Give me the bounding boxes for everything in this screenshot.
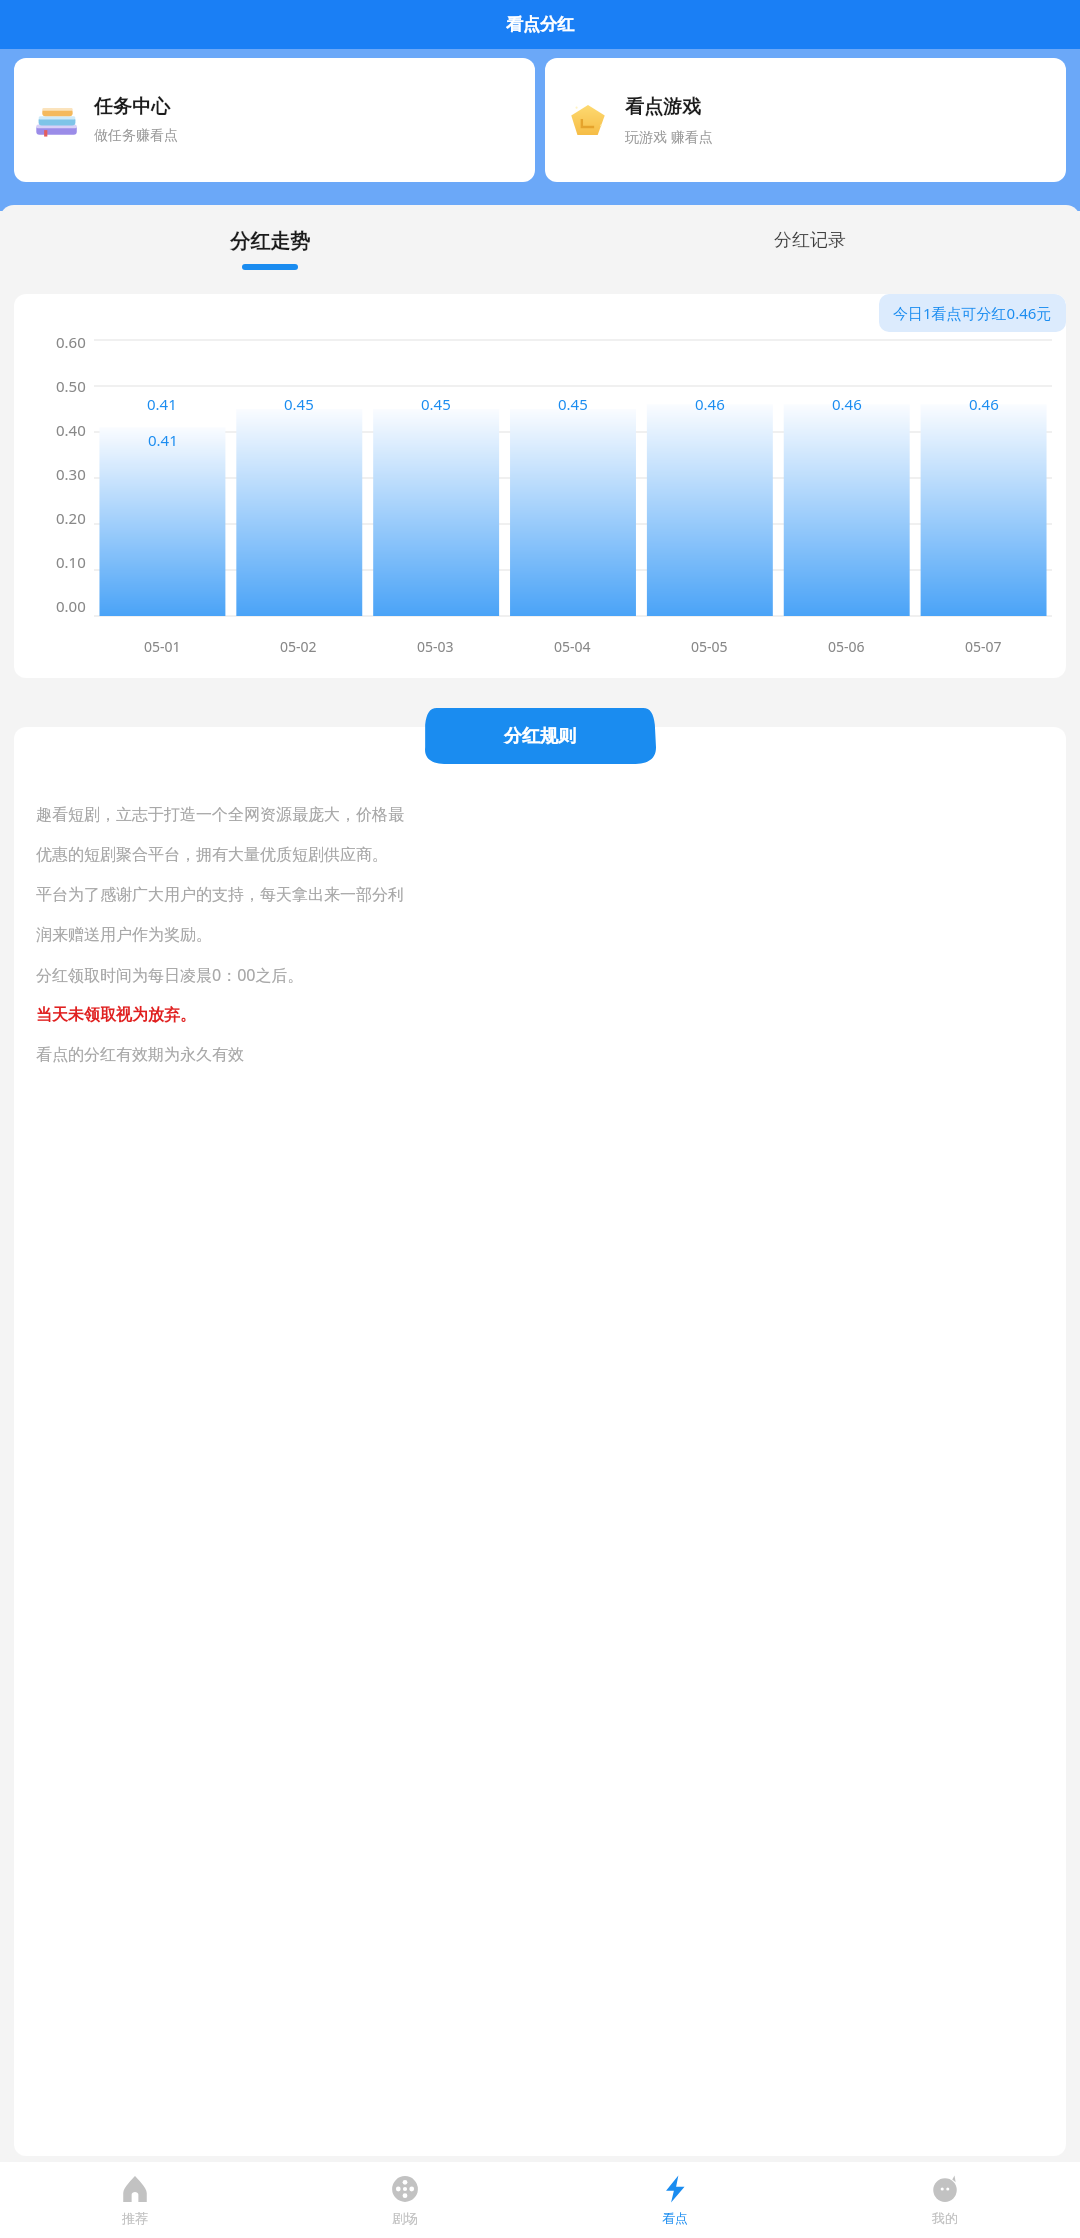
staticText: 0.60 <box>56 332 86 352</box>
staticText: 0.41 <box>148 430 178 450</box>
staticText: 05-05 <box>691 637 728 656</box>
staticText: 0.45 <box>558 394 588 414</box>
staticText: 剧场 <box>392 2210 418 2226</box>
staticText: 看点分红 <box>506 14 574 35</box>
staticText: 看点游戏 <box>625 95 701 119</box>
staticText: 0.46 <box>832 394 862 414</box>
staticText: 0.45 <box>421 394 451 414</box>
staticText: 平台为了感谢广大用户的支持，每天拿出来一部分利 <box>36 885 404 905</box>
staticText: 分红领取时间为每日凌晨0：00之后。 <box>36 964 304 986</box>
staticText: 0.10 <box>56 552 86 572</box>
staticText: 任务中心 <box>94 95 170 119</box>
staticText: 分红记录 <box>774 229 846 252</box>
staticText: 玩游戏 赚看点 <box>625 127 713 146</box>
button[interactable]: 分红走势 <box>0 223 540 276</box>
staticText: 今日1看点可分红0.46元 <box>893 303 1052 323</box>
staticText: 05-07 <box>965 637 1002 656</box>
button[interactable]: 我的 <box>810 2162 1080 2238</box>
staticText: 看点的分红有效期为永久有效 <box>36 1045 244 1065</box>
staticText: 我的 <box>932 2210 958 2226</box>
staticText: 0.45 <box>284 394 314 414</box>
button[interactable]: 剧场 <box>270 2162 540 2238</box>
staticText: 0.46 <box>969 394 999 414</box>
staticText: 0.30 <box>56 464 86 484</box>
staticText: 0.50 <box>56 376 86 396</box>
staticText: 优惠的短剧聚合平台，拥有大量优质短剧供应商。 <box>36 845 388 865</box>
button[interactable]: 看点 <box>540 2162 810 2238</box>
button[interactable]: 推荐 <box>0 2162 270 2238</box>
staticText: 0.46 <box>695 394 725 414</box>
staticText: 0.20 <box>56 508 86 528</box>
staticText: 分红走势 <box>230 229 310 254</box>
staticText: 05-06 <box>828 637 865 656</box>
staticText: 做任务赚看点 <box>94 127 178 145</box>
button[interactable]: 分红记录 <box>540 223 1080 274</box>
staticText: 趣看短剧，立志于打造一个全网资源最庞大，价格最 <box>36 805 404 825</box>
staticText: 当天未领取视为放弃。 <box>36 1005 196 1025</box>
staticText: 分红规则 <box>504 725 576 748</box>
staticText: 05-03 <box>417 637 454 656</box>
staticText: 05-02 <box>280 637 317 656</box>
staticText: 0.41 <box>147 394 177 414</box>
staticText: 润来赠送用户作为奖励。 <box>36 925 212 945</box>
staticText: 05-04 <box>554 637 591 656</box>
staticText: 0.40 <box>56 420 86 440</box>
button[interactable]: 看点游戏 <box>545 58 1066 182</box>
staticText: 推荐 <box>122 2210 148 2226</box>
staticText: 0.00 <box>56 596 86 616</box>
staticText: 05-01 <box>144 637 181 656</box>
button[interactable]: 任务中心 <box>14 58 535 182</box>
staticText: 看点 <box>662 2210 688 2226</box>
